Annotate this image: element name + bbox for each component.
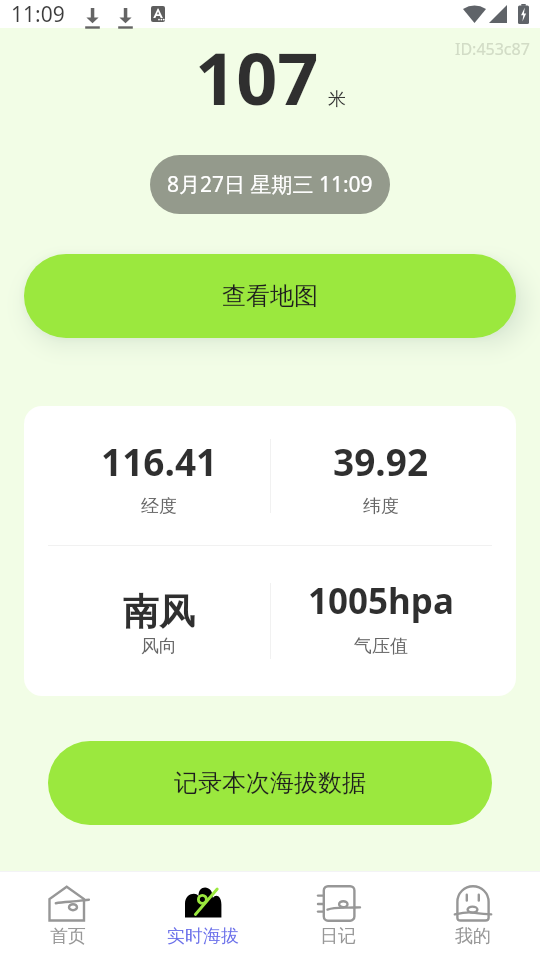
staticText: 风向 bbox=[141, 635, 177, 658]
staticText: 记录本次海拔数据 bbox=[174, 768, 366, 798]
staticText: 日记 bbox=[320, 925, 356, 948]
staticText: ID:453c87 bbox=[455, 38, 530, 60]
staticText: 1005hpa bbox=[308, 577, 454, 625]
button[interactable]: 查看地图 bbox=[24, 254, 516, 338]
button[interactable]: 首页 bbox=[0, 872, 135, 960]
staticText: 107 bbox=[195, 28, 319, 126]
staticText: 查看地图 bbox=[222, 281, 318, 311]
staticText: 8月27日 星期三 11:09 bbox=[167, 170, 373, 199]
staticText: 116.41 bbox=[101, 436, 218, 486]
staticText: 39.92 bbox=[333, 436, 429, 486]
button[interactable]: 我的 bbox=[405, 872, 540, 960]
button[interactable]: 记录本次海拔数据 bbox=[48, 741, 492, 825]
staticText: 气压值 bbox=[354, 635, 408, 658]
button[interactable]: 实时海拔 bbox=[135, 872, 270, 960]
button[interactable]: 8月27日 星期三 11:09 bbox=[150, 155, 390, 214]
staticText: 我的 bbox=[455, 925, 491, 948]
staticText: 11:09 bbox=[11, 0, 65, 28]
staticText: 首页 bbox=[50, 925, 86, 948]
staticText: 经度 bbox=[141, 495, 177, 518]
staticText: 纬度 bbox=[363, 495, 399, 518]
staticText: 米 bbox=[328, 88, 346, 111]
staticText: 实时海拔 bbox=[167, 925, 239, 948]
staticText: 南风 bbox=[123, 589, 195, 634]
button[interactable]: 日记 bbox=[270, 872, 405, 960]
